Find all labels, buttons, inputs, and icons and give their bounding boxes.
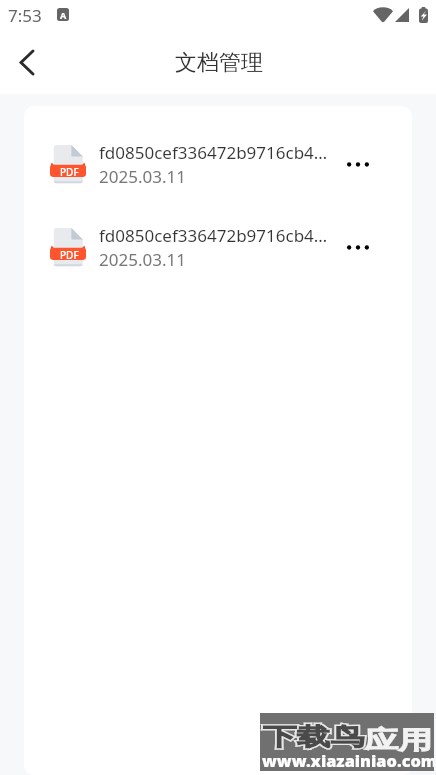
staticText: 7:53 [8, 4, 42, 27]
button[interactable]: More options [336, 142, 380, 186]
staticText: 应用 [263, 722, 432, 755]
staticText: PDF [60, 248, 79, 262]
staticText: PDF [60, 165, 79, 179]
staticText: A [60, 9, 67, 21]
staticText: 下载鸟 [263, 722, 364, 752]
staticText: www.xiazainiao.com [262, 750, 434, 771]
staticText: 下载鸟 [263, 722, 364, 752]
staticText: fd0850cef336472b9716cb4… [99, 224, 328, 247]
staticText: 2025.03.11 [99, 165, 186, 187]
staticText: fd0850cef336472b9716cb4… [99, 141, 328, 164]
staticText: 2025.03.11 [99, 248, 186, 270]
button[interactable]: PDF [24, 224, 412, 270]
button[interactable]: More options [336, 225, 380, 269]
button[interactable]: Back [4, 37, 52, 85]
staticText: 文档管理 [175, 49, 263, 77]
button[interactable]: PDF [24, 141, 412, 187]
